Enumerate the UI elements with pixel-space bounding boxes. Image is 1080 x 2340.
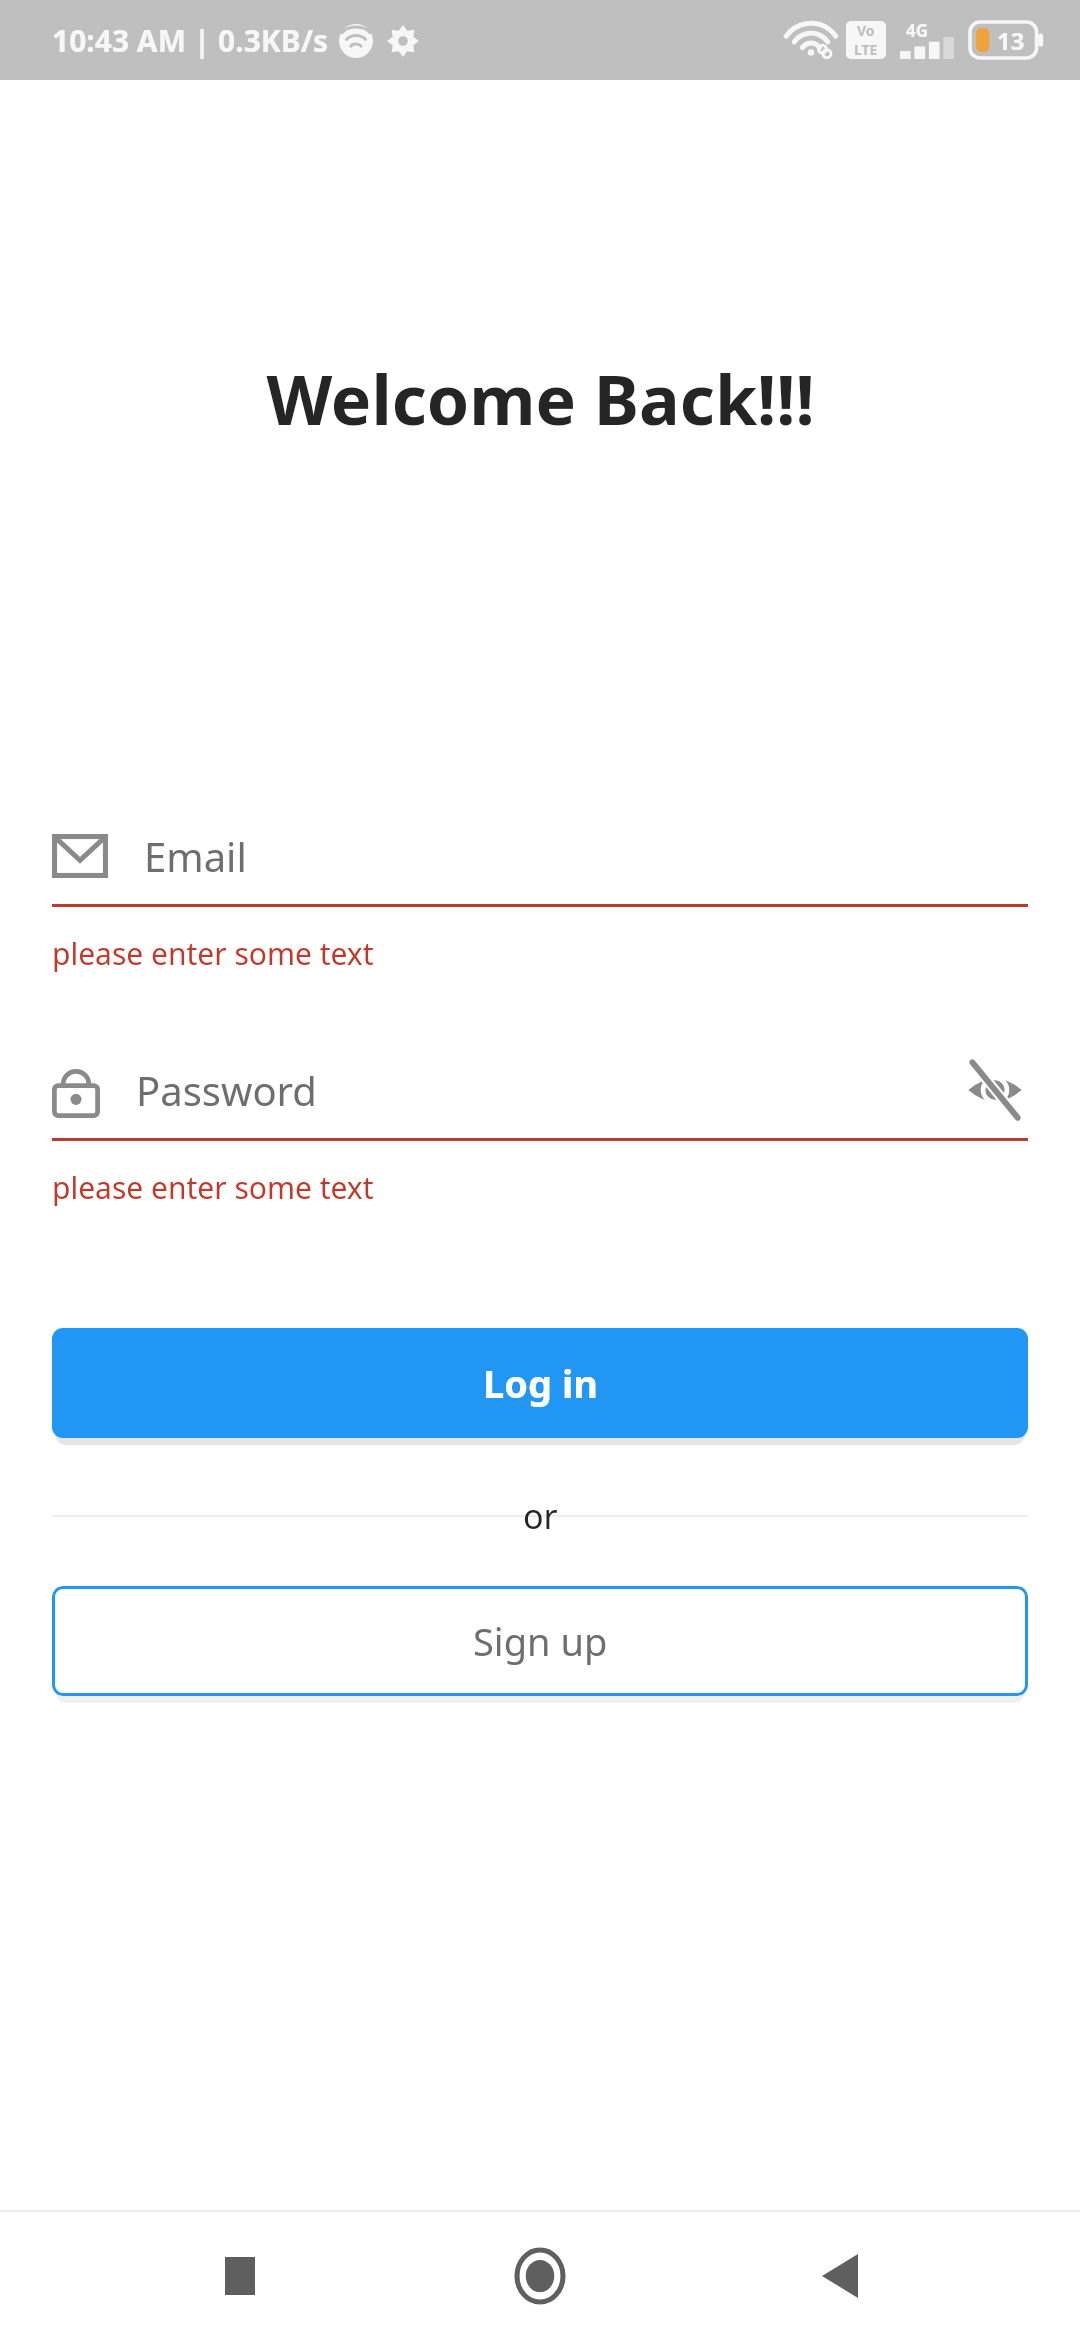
staticText: Welcome Back!!! [266,352,815,445]
button[interactable]: Password [52,1042,1028,1141]
button[interactable]: Recent apps [180,2216,300,2336]
staticText: or [523,1493,558,1539]
staticText: Email [144,829,1028,883]
staticText: 4G [906,19,929,42]
button[interactable]: Sign up [52,1586,1028,1696]
staticText: 10:43 AM | 0.3KB/s [52,20,329,61]
button[interactable]: Toggle password visibility [962,1057,1028,1123]
staticText: Vo [857,21,875,40]
staticText: Password [136,1063,962,1117]
button[interactable]: Home [480,2216,600,2336]
button[interactable]: Back [780,2216,900,2336]
button[interactable]: Email [52,808,1028,907]
staticText: please enter some text [52,1167,374,1208]
staticText: LTE [854,40,878,59]
staticText: Sign up [473,1615,608,1667]
button[interactable]: Log in [52,1328,1028,1438]
staticText: please enter some text [52,933,374,974]
staticText: 13 [997,24,1025,57]
staticText: Log in [483,1357,598,1409]
